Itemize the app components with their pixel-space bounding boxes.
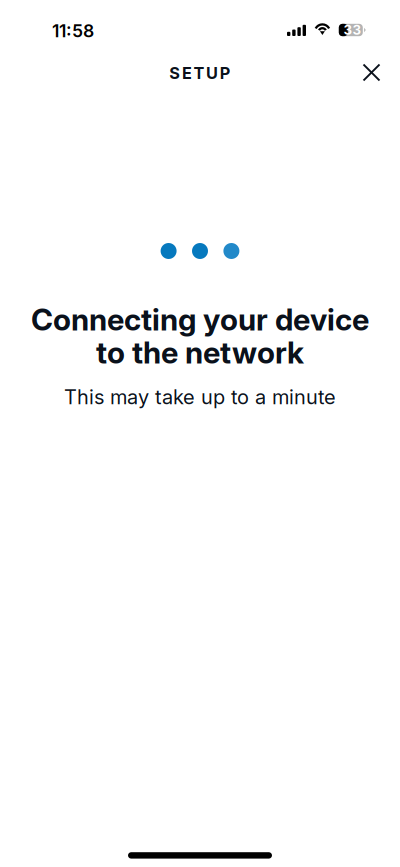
staticText: 11:58 bbox=[52, 20, 94, 41]
staticText: to the network bbox=[96, 334, 304, 371]
staticText: Connecting your device bbox=[31, 301, 369, 338]
button[interactable]: Close bbox=[349, 52, 393, 96]
staticText: SETUP bbox=[169, 63, 231, 83]
staticText: 33 bbox=[343, 22, 361, 38]
staticText: This may take up to a minute bbox=[64, 385, 336, 409]
